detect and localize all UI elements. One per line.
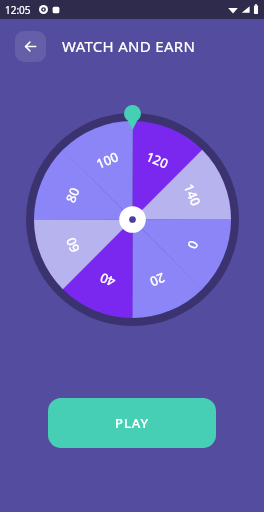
- staticText: 80: [61, 185, 84, 205]
- staticText: 12:05: [5, 3, 31, 17]
- staticText: 40: [97, 269, 118, 291]
- staticText: 100: [93, 147, 121, 173]
- button[interactable]: Spin wheel: [26, 113, 239, 326]
- staticText: 60: [61, 235, 84, 255]
- staticText: PLAY: [115, 414, 150, 432]
- staticText: 20: [147, 269, 168, 291]
- staticText: 0: [183, 238, 203, 252]
- staticText: 140: [180, 181, 205, 209]
- staticText: 120: [143, 147, 172, 173]
- button[interactable]: Back: [15, 31, 46, 62]
- button[interactable]: PLAY: [48, 398, 216, 448]
- staticText: WATCH AND EARN: [62, 36, 196, 56]
